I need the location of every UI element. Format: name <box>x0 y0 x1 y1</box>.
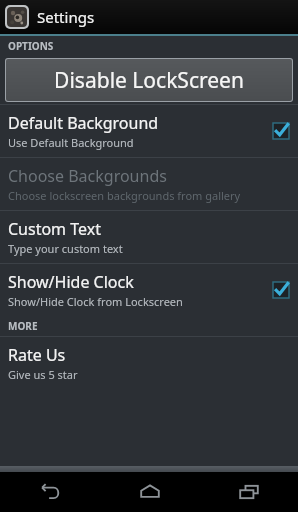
staticText: Show/Hide Clock <box>8 271 134 293</box>
staticText: Disable LockScreen <box>54 66 244 95</box>
button[interactable]: Disable LockScreen <box>6 59 292 101</box>
staticText: Settings <box>37 7 95 27</box>
staticText: Choose lockscreen backgrounds from galle… <box>8 188 241 203</box>
staticText: Type your custom text <box>8 241 123 256</box>
staticText: Default Background <box>8 112 159 134</box>
button[interactable]: Default Background <box>0 105 298 157</box>
button[interactable]: Custom Text <box>0 211 298 263</box>
staticText: Give us 5 star <box>8 367 78 382</box>
staticText: Show/Hide Clock from Lockscreen <box>8 294 183 309</box>
button[interactable]: Toggle <box>272 281 290 299</box>
button[interactable]: Choose Backgrounds <box>0 158 298 210</box>
staticText: OPTIONS <box>8 39 54 53</box>
button[interactable]: Home <box>128 472 172 512</box>
staticText: Rate Us <box>8 344 66 366</box>
button[interactable]: Rate Us <box>0 337 298 389</box>
staticText: MORE <box>8 319 38 333</box>
button[interactable]: Toggle <box>272 122 290 140</box>
button[interactable]: Show/Hide Clock <box>0 264 298 316</box>
staticText: Choose Backgrounds <box>8 165 167 187</box>
button[interactable]: Back <box>28 472 72 512</box>
button[interactable]: Recent apps <box>227 472 271 512</box>
staticText: Use Default Background <box>8 135 134 150</box>
staticText: Custom Text <box>8 218 101 240</box>
